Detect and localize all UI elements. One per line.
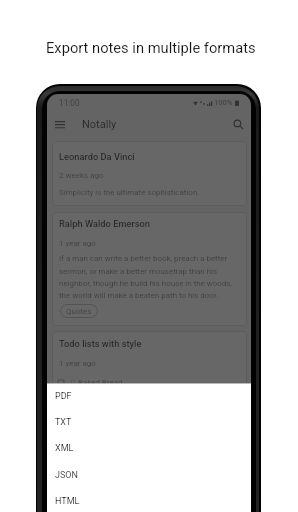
button[interactable]: Search (228, 114, 248, 134)
button[interactable]: Open navigation menu (50, 114, 70, 134)
staticText: PDF (55, 391, 72, 402)
button[interactable]: PDF (47, 383, 251, 409)
staticText: Ralph Waldo Emerson (59, 218, 151, 229)
button[interactable]: HTML (47, 488, 251, 512)
staticText: Quotes (66, 307, 92, 316)
button[interactable]: Leonardo Da Vinci (52, 141, 247, 206)
staticText: 2 weeks ago (59, 171, 104, 180)
staticText: XML (55, 443, 74, 454)
staticText: If a man can write a better book, preach… (59, 254, 232, 300)
staticText: HTML (55, 496, 80, 507)
button[interactable]: TXT (47, 409, 251, 435)
staticText: 1 year ago (59, 239, 96, 248)
staticText: Notally (82, 118, 117, 131)
button[interactable]: Quotes (60, 304, 98, 318)
staticText: Export notes in multiple formats (46, 39, 256, 56)
button[interactable]: Todo lists with style (52, 331, 247, 393)
staticText: 11:00 (59, 98, 80, 108)
button[interactable]: JSON (47, 462, 251, 488)
staticText: JSON (55, 470, 78, 481)
staticText: 100% (214, 98, 233, 107)
staticText: 1 year ago (59, 359, 96, 368)
staticText: Leonardo Da Vinci (59, 151, 135, 162)
staticText: TXT (55, 417, 72, 428)
staticText: Simplicity is the ultimate sophisticatio… (59, 188, 200, 197)
staticText: Baked Bread (78, 378, 123, 387)
button[interactable]: XML (47, 435, 251, 461)
staticText: Todo lists with style (59, 338, 142, 349)
button[interactable]: Ralph Waldo Emerson (52, 212, 247, 326)
